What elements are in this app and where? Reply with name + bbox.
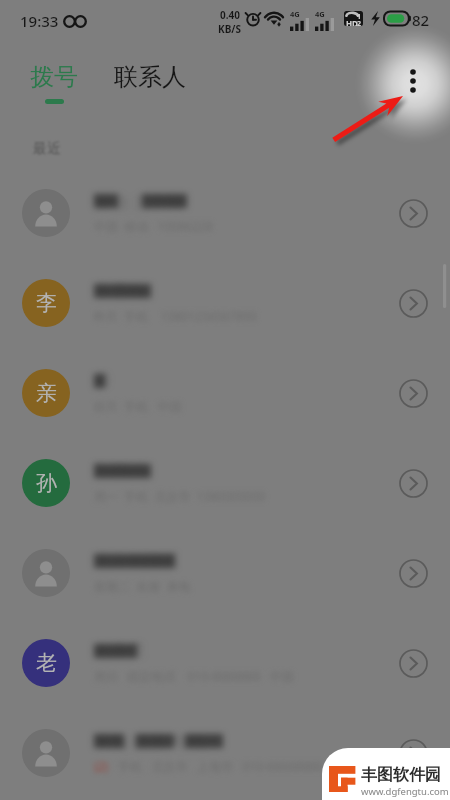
button[interactable]: Call details: [391, 191, 435, 235]
staticText: 丰图软件园: [361, 765, 441, 785]
staticText: 老家里: [94, 640, 145, 661]
button[interactable]: [0, 528, 450, 618]
button[interactable]: [0, 618, 450, 708]
staticText: KB/S: [218, 22, 241, 34]
staticText: 孙: [36, 470, 57, 496]
button[interactable]: 拨号: [27, 62, 81, 104]
staticText: 北京朝阳区: [94, 550, 179, 571]
staticText: 李: [36, 290, 57, 316]
button[interactable]: [0, 168, 450, 258]
staticText: 未知 联系 号码: [94, 730, 205, 753]
staticText: 0.40: [220, 8, 240, 22]
staticText: 4G: [315, 9, 325, 19]
staticText: 拨号: [30, 62, 78, 92]
staticText: 4G: [290, 9, 300, 19]
staticText: 李雪梅: [94, 280, 145, 301]
button[interactable]: Call details: [391, 551, 435, 595]
staticText: www.dgfengtu.com: [361, 785, 449, 798]
staticText: 19:33: [20, 11, 59, 31]
button[interactable]: Call details: [391, 281, 435, 325]
staticText: 移动 北京彩: [94, 190, 184, 213]
button[interactable]: Call details: [391, 371, 435, 415]
staticText: 孙丽娟: [94, 460, 145, 481]
staticText: 老: [36, 650, 57, 676]
button[interactable]: [0, 348, 450, 438]
staticText: 最近: [33, 140, 61, 158]
button[interactable]: Call details: [391, 461, 435, 505]
staticText: 2: [357, 19, 362, 26]
staticText: HD: [346, 18, 358, 26]
button[interactable]: 联系人: [111, 62, 189, 92]
staticText: 82: [412, 10, 430, 30]
staticText: 亲: [36, 380, 57, 406]
button[interactable]: [0, 258, 450, 348]
button[interactable]: [0, 438, 450, 528]
staticText: (2): [94, 758, 109, 774]
staticText: 联系人: [114, 62, 186, 92]
button[interactable]: Call details: [391, 731, 435, 775]
button[interactable]: [0, 708, 450, 798]
button[interactable]: Call details: [391, 641, 435, 685]
button[interactable]: More options: [391, 59, 436, 104]
staticText: 亲: [94, 370, 111, 391]
staticText: 1: [357, 12, 362, 22]
